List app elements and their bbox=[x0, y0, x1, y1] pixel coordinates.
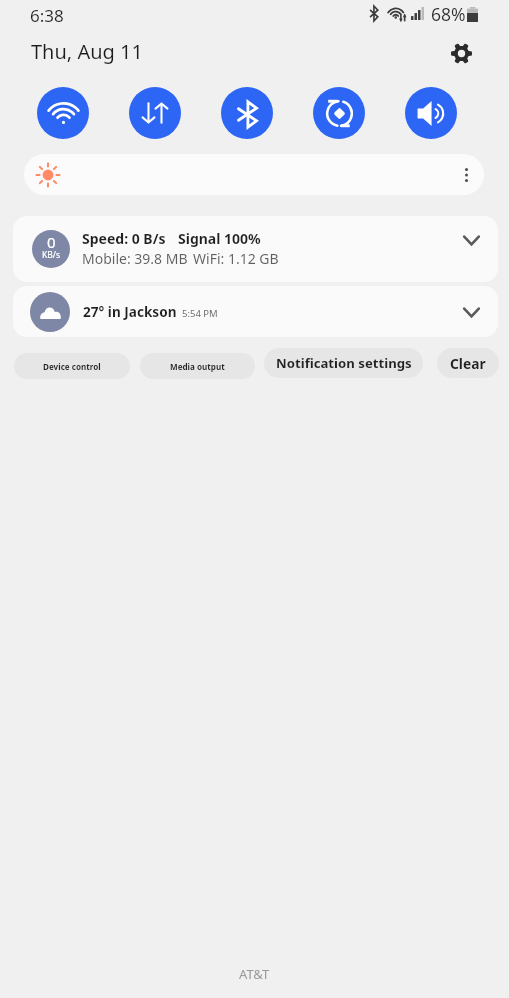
staticText: 6:38 bbox=[30, 4, 64, 27]
staticText: Clear bbox=[450, 354, 486, 373]
staticText: 5:54 PM bbox=[182, 307, 218, 320]
staticText: 68% bbox=[431, 2, 466, 26]
button[interactable]: 27° in Jackson bbox=[13, 286, 498, 337]
button[interactable]: Mobile data bbox=[129, 87, 181, 139]
button[interactable]: 0 bbox=[13, 216, 498, 282]
button[interactable]: Clear bbox=[437, 348, 499, 378]
staticText: Thu, Aug 11 bbox=[31, 38, 143, 65]
staticText: Media output bbox=[170, 361, 225, 372]
staticText: Device control bbox=[43, 361, 101, 372]
button[interactable]: Expand bbox=[458, 299, 484, 325]
staticText: Notification settings bbox=[276, 354, 412, 372]
button[interactable]: Settings bbox=[443, 35, 479, 71]
button[interactable]: Wi-Fi bbox=[37, 87, 89, 139]
button[interactable]: Notification settings bbox=[264, 348, 423, 378]
staticText: 27° in Jackson bbox=[83, 302, 177, 321]
button[interactable]: More options bbox=[453, 162, 479, 188]
button[interactable]: Sound bbox=[405, 87, 457, 139]
staticText: AT&T bbox=[239, 965, 270, 983]
button[interactable]: Bluetooth bbox=[221, 87, 273, 139]
staticText: KB/s bbox=[42, 249, 61, 261]
button[interactable]: More options bbox=[24, 154, 484, 195]
staticText: 0 bbox=[47, 232, 56, 252]
staticText: Mobile: 39.8 MB bbox=[82, 249, 188, 268]
button[interactable]: Device control bbox=[14, 353, 130, 379]
staticText: WiFi: 1.12 GB bbox=[193, 249, 279, 268]
button[interactable]: Expand bbox=[458, 227, 484, 253]
staticText: Speed: 0 B/s bbox=[82, 229, 166, 248]
button[interactable]: Media output bbox=[140, 353, 255, 379]
button[interactable]: Auto rotate bbox=[313, 87, 365, 139]
staticText: Signal 100% bbox=[178, 229, 261, 248]
